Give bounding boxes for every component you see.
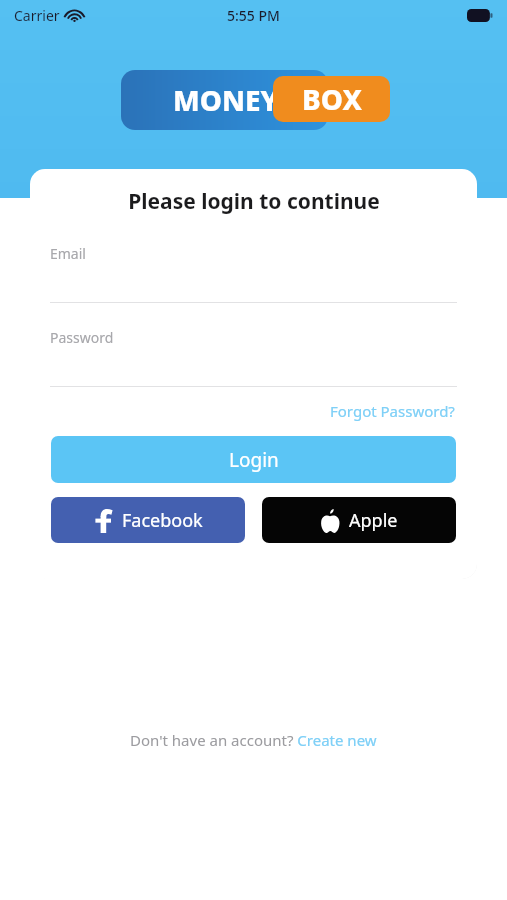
button[interactable]: Don't have an account? Create new <box>130 730 377 750</box>
staticText: Please login to continue <box>128 187 380 216</box>
button[interactable]: Facebook <box>51 497 245 543</box>
staticText: Don't have an account? Create new <box>130 730 377 750</box>
staticText: Email <box>50 244 86 263</box>
staticText: Apple <box>349 508 398 533</box>
staticText: Facebook <box>122 508 203 533</box>
button[interactable]: Email <box>50 244 457 303</box>
staticText: BOX <box>302 80 362 118</box>
button[interactable]: Password <box>50 328 457 387</box>
button[interactable]: Forgot Password? <box>328 399 457 423</box>
button[interactable]: Apple <box>262 497 456 543</box>
staticText: Carrier <box>14 6 60 25</box>
staticText: Login <box>229 447 279 473</box>
staticText: 5:55 PM <box>227 6 280 25</box>
staticText: Forgot Password? <box>330 401 455 421</box>
button[interactable]: Login <box>51 436 456 483</box>
staticText: Password <box>50 328 114 347</box>
staticText: MONEY <box>173 81 279 119</box>
